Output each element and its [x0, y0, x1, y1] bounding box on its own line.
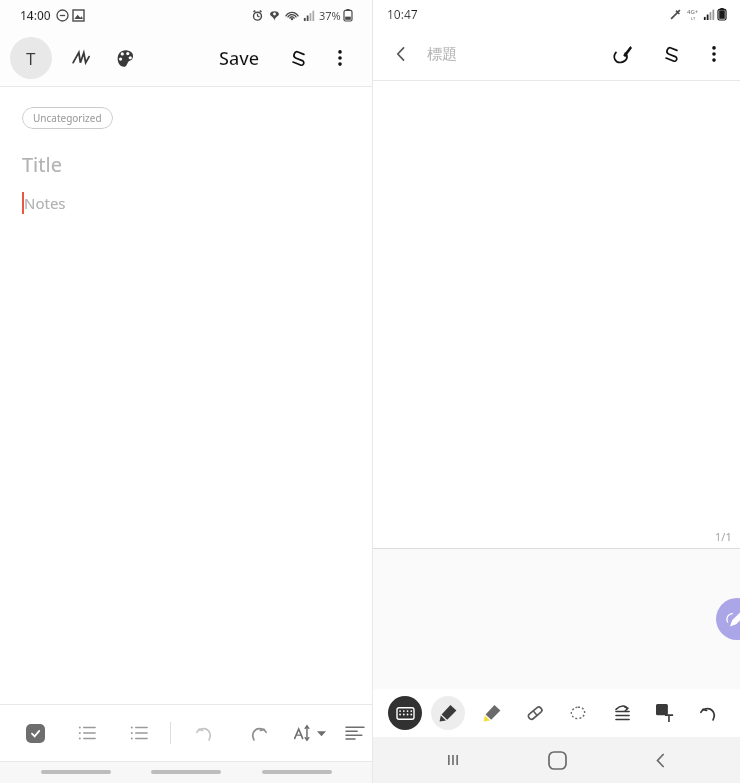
button[interactable]: Auto format — [604, 696, 638, 730]
staticText: Title — [22, 151, 62, 178]
button[interactable]: Undo — [691, 696, 725, 730]
staticText: 標題 — [427, 45, 457, 64]
button[interactable]: Redo — [241, 716, 275, 750]
button[interactable]: Pen — [431, 696, 465, 730]
button[interactable]: Back — [636, 737, 684, 783]
button[interactable]: Home — [533, 737, 581, 783]
button[interactable]: Eraser — [518, 696, 552, 730]
button[interactable] — [291, 719, 329, 747]
button[interactable]: Lasso select — [561, 696, 595, 730]
button[interactable]: Attach — [652, 34, 692, 74]
button[interactable]: Keyboard — [388, 696, 422, 730]
button[interactable]: Handwriting — [62, 39, 100, 77]
button[interactable]: Back — [381, 34, 421, 74]
staticText: 10:47 — [387, 6, 418, 22]
button[interactable]: Save — [213, 42, 266, 75]
staticText: 4G+ — [687, 8, 699, 16]
staticText: LT — [691, 16, 696, 21]
button[interactable]: Alignment — [343, 716, 366, 750]
button[interactable]: More options — [322, 40, 358, 76]
button[interactable]: Palette — [106, 39, 144, 77]
staticText: 1/1 — [715, 529, 732, 544]
button[interactable]: Recents — [429, 737, 477, 783]
button[interactable]: More options — [696, 36, 732, 72]
staticText: 14:00 — [20, 7, 51, 23]
staticText: T — [26, 47, 36, 70]
button[interactable]: Handwriting mode — [602, 34, 642, 74]
button[interactable]: Numbered list — [70, 716, 104, 750]
button[interactable]: Uncategorized — [22, 107, 113, 129]
button[interactable]: Convert to text — [648, 696, 682, 730]
button[interactable]: Attach — [280, 39, 318, 77]
button[interactable]: Undo — [187, 716, 221, 750]
button[interactable]: Checklist — [18, 716, 52, 750]
staticText: Save — [219, 46, 260, 71]
staticText: 37% — [319, 8, 341, 23]
button[interactable]: Highlighter — [475, 696, 509, 730]
button[interactable]: Bulleted list — [122, 716, 156, 750]
staticText: Uncategorized — [33, 111, 102, 125]
button[interactable]: Text mode — [10, 37, 52, 79]
button[interactable]: Voice note — [716, 598, 740, 640]
staticText: Notes — [24, 193, 66, 213]
